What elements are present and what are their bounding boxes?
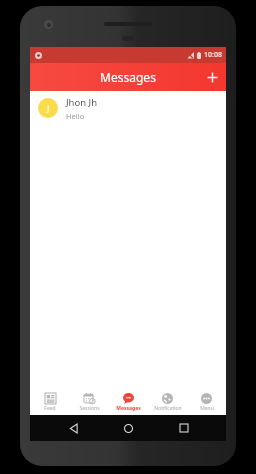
button[interactable]: Recent apps bbox=[171, 415, 197, 441]
button[interactable]: J bbox=[30, 91, 226, 125]
staticText: 10:08 bbox=[204, 50, 222, 60]
staticText: Feed bbox=[44, 405, 56, 412]
button[interactable]: Sessions bbox=[70, 390, 109, 415]
button[interactable]: Back bbox=[60, 415, 86, 441]
button[interactable]: Feed bbox=[30, 390, 70, 415]
staticText: Menu bbox=[200, 405, 214, 412]
button[interactable]: New message bbox=[198, 63, 226, 91]
button[interactable]: Menu bbox=[187, 390, 226, 415]
staticText: Sessions bbox=[79, 405, 100, 412]
staticText: Messages bbox=[100, 69, 156, 85]
staticText: Messages bbox=[116, 405, 141, 412]
button[interactable]: Notification bbox=[148, 390, 187, 415]
staticText: Hello bbox=[66, 111, 85, 121]
staticText: Notification bbox=[154, 405, 182, 412]
button[interactable]: Messages bbox=[109, 390, 148, 415]
staticText: Jhon Jh bbox=[66, 96, 98, 109]
button[interactable]: Home bbox=[115, 415, 141, 441]
staticText: J bbox=[47, 102, 50, 114]
